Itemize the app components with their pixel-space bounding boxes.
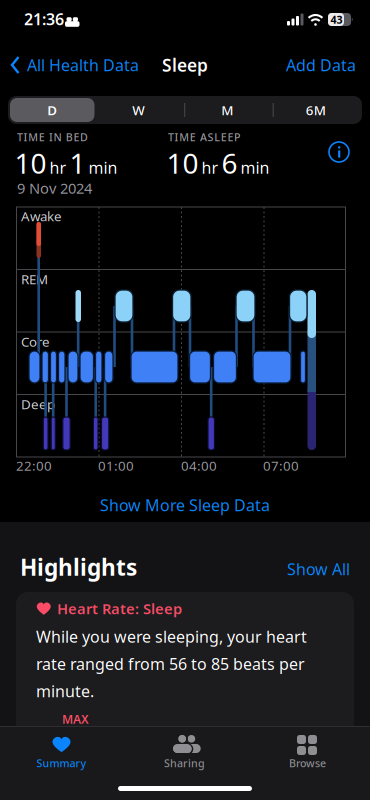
staticText: M	[221, 101, 233, 119]
staticText: 01:00	[98, 457, 134, 474]
staticText: 6	[221, 144, 237, 182]
staticText: 07:00	[263, 457, 299, 474]
staticText: 04:00	[181, 457, 217, 474]
staticText: min	[240, 157, 269, 178]
staticText: rate ranged from 56 to 85 beats per	[36, 653, 305, 674]
staticText: 1	[69, 144, 85, 182]
staticText: Show All	[287, 558, 350, 580]
button[interactable]: D	[10, 98, 94, 122]
staticText: 6M	[306, 101, 326, 119]
staticText: While you were sleeping, your heart	[36, 626, 307, 647]
button[interactable]: Sharing	[133, 728, 236, 770]
staticText: 22:00	[16, 457, 52, 474]
staticText: 21:36	[24, 8, 64, 30]
staticText: min	[88, 157, 117, 178]
staticText: Browse	[289, 756, 326, 770]
button[interactable]: W	[132, 101, 145, 119]
staticText: Summary	[36, 756, 86, 770]
staticText: D	[47, 101, 57, 119]
staticText: TIME IN BED	[17, 130, 88, 144]
button[interactable]: M	[221, 101, 233, 119]
staticText: Awake	[21, 207, 62, 225]
staticText: minute.	[36, 680, 94, 702]
button[interactable]: Heart Rate: Sleep	[16, 592, 354, 800]
button[interactable]: 6M	[306, 101, 326, 119]
staticText: MAX	[62, 711, 89, 727]
button[interactable]: Info	[328, 141, 350, 163]
staticText: 10	[14, 144, 46, 182]
button[interactable]: Add Data	[286, 54, 356, 76]
staticText: Sharing	[164, 756, 205, 770]
staticText: W	[132, 101, 145, 119]
button[interactable]: Show More Sleep Data	[100, 494, 270, 516]
staticText: Highlights	[20, 552, 137, 582]
staticText: 10	[166, 144, 198, 182]
button[interactable]: Summary	[10, 728, 113, 770]
staticText: All Health Data	[27, 54, 139, 76]
staticText: REM	[21, 270, 48, 288]
staticText: Deep	[21, 395, 55, 413]
staticText: 9 Nov 2024	[17, 178, 92, 198]
staticText: Show More Sleep Data	[100, 494, 270, 516]
staticText: Sleep	[162, 53, 208, 76]
button[interactable]: Back	[10, 54, 139, 76]
button[interactable]: Browse	[256, 728, 359, 770]
staticText: Heart Rate: Sleep	[57, 599, 182, 618]
staticText: 43	[330, 12, 342, 27]
staticText: Core	[21, 333, 50, 350]
staticText: Add Data	[286, 54, 356, 76]
staticText: hr	[201, 157, 218, 178]
staticText: TIME ASLEEP	[168, 130, 241, 144]
button[interactable]: Show All	[287, 558, 350, 580]
staticText: hr	[49, 157, 66, 178]
